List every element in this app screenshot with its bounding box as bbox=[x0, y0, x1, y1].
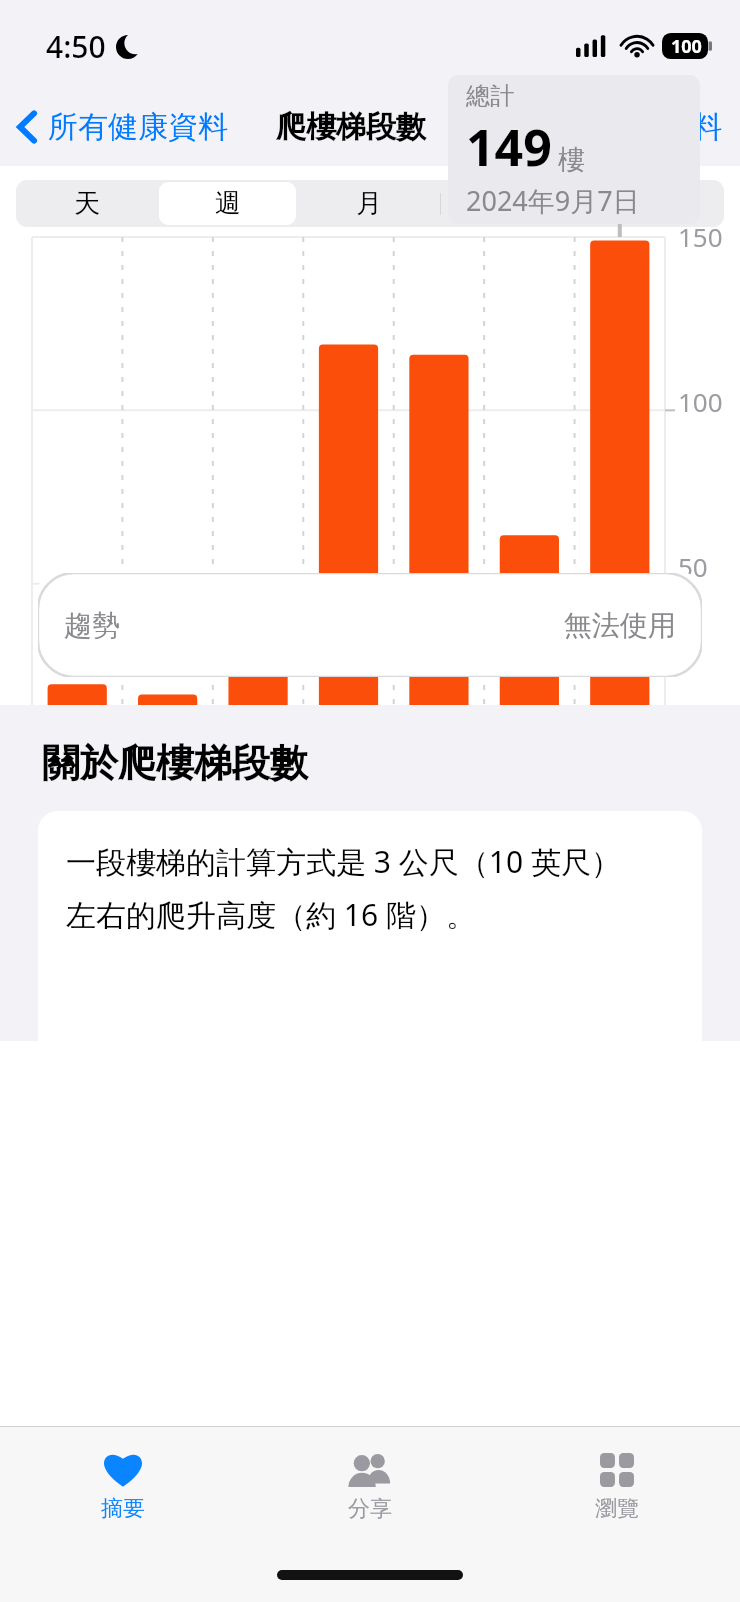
staticText: 爬樓梯段數 bbox=[276, 108, 426, 146]
staticText: 100 bbox=[678, 384, 723, 419]
staticText: 總計 bbox=[466, 81, 514, 111]
button[interactable]: 週 bbox=[157, 180, 298, 227]
button[interactable]: 摘要 bbox=[0, 1427, 246, 1545]
staticText: 無法使用 bbox=[564, 608, 676, 643]
staticText: 樓 bbox=[558, 143, 585, 177]
staticText: 左右的爬升高度（約 16 階）。 bbox=[66, 894, 476, 935]
staticText: 149 bbox=[466, 113, 552, 181]
button[interactable]: 年 bbox=[582, 180, 724, 227]
staticText: 所有健康資料 bbox=[48, 108, 228, 146]
button[interactable]: 所有健康資料 bbox=[0, 102, 236, 152]
staticText: 週 bbox=[215, 187, 241, 220]
button[interactable]: 分享 bbox=[246, 1427, 493, 1545]
button[interactable]: 6個月 bbox=[440, 180, 582, 227]
staticText: 週日 bbox=[53, 765, 103, 796]
button[interactable]: 趨勢 bbox=[38, 573, 702, 677]
button[interactable]: 天 bbox=[16, 180, 157, 227]
button[interactable]: 月 bbox=[298, 180, 440, 227]
staticText: 4:50 bbox=[46, 26, 106, 67]
button[interactable]: 瀏覽 bbox=[493, 1427, 740, 1545]
staticText: 週二 bbox=[235, 765, 285, 796]
staticText: 週一 bbox=[144, 765, 194, 796]
button[interactable]: 加入資料 bbox=[584, 100, 740, 154]
staticText: 6個月 bbox=[478, 186, 545, 222]
staticText: 趨勢 bbox=[64, 608, 120, 643]
staticText: 月 bbox=[356, 187, 382, 220]
staticText: 加入資料 bbox=[602, 108, 722, 146]
staticText: 2024年9月7日 bbox=[466, 182, 640, 219]
staticText: 50 bbox=[678, 549, 708, 584]
staticText: 分享 bbox=[348, 1495, 392, 1523]
staticText: 100 bbox=[671, 34, 702, 59]
button[interactable]: 總計 bbox=[448, 75, 700, 224]
staticText: 天 bbox=[74, 187, 100, 220]
button[interactable]: 一段樓梯的計算方式是 3 公尺（10 英尺） bbox=[38, 811, 702, 1041]
staticText: 150 bbox=[678, 219, 723, 254]
staticText: 瀏覽 bbox=[595, 1495, 639, 1523]
staticText: 一段樓梯的計算方式是 3 公尺（10 英尺） bbox=[66, 841, 621, 882]
staticText: 摘要 bbox=[101, 1495, 145, 1523]
staticText: 關於爬樓梯段數 bbox=[42, 739, 308, 787]
